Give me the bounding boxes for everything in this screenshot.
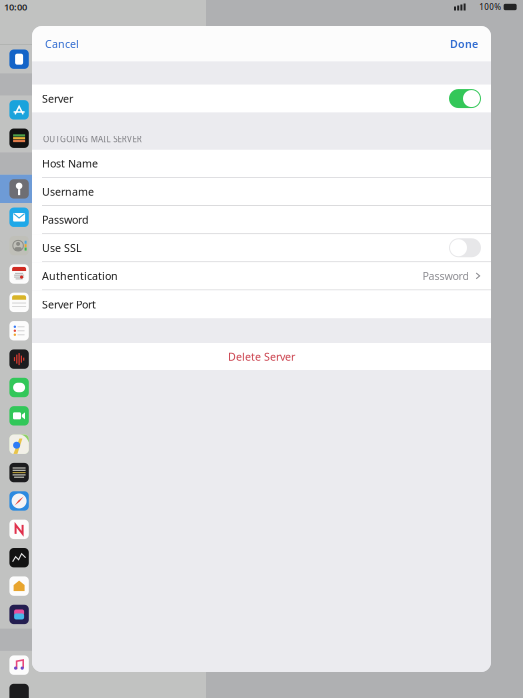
staticText: OUTGOING MAIL SERVER: [43, 134, 142, 144]
button[interactable]: Done: [411, 26, 491, 62]
button[interactable]: Passwords: [0, 175, 206, 203]
button[interactable]: Username: [32, 178, 491, 206]
button[interactable]: Server Port: [32, 290, 491, 318]
button[interactable]: Authentication: [32, 262, 491, 290]
button[interactable]: Contacts: [0, 231, 206, 260]
button[interactable]: Shortcuts: [0, 600, 206, 629]
button[interactable]: Server: [32, 84, 491, 113]
button[interactable]: Cancel: [32, 26, 122, 62]
button[interactable]: Reminders: [0, 317, 206, 345]
button[interactable]: Password: [32, 206, 491, 234]
button[interactable]: FaceTime: [0, 402, 206, 430]
button[interactable]: Privacy & Security: [0, 45, 206, 73]
button[interactable]: Stocks: [0, 543, 206, 572]
staticText: Use SSL: [42, 241, 82, 255]
button[interactable]: Calendar: [0, 260, 206, 288]
button[interactable]: App Store: [0, 96, 206, 124]
button[interactable]: Maps: [0, 430, 206, 458]
staticText: Server Port: [42, 297, 96, 311]
staticText: Server: [42, 91, 73, 106]
button[interactable]: Music: [0, 651, 206, 679]
staticText: 100%: [479, 2, 501, 12]
staticText: Username: [42, 184, 94, 199]
button[interactable]: Safari: [0, 487, 206, 515]
button[interactable]: Mail: [0, 203, 206, 231]
button[interactable]: TV: [0, 679, 206, 698]
button[interactable]: Wallet: [0, 124, 206, 152]
staticText: Password: [42, 213, 89, 227]
staticText: Cancel: [45, 37, 79, 51]
staticText: Host Name: [42, 156, 98, 170]
button[interactable]: Voice Memos: [0, 345, 206, 373]
button[interactable]: Home: [0, 572, 206, 600]
button[interactable]: Notes: [0, 288, 206, 317]
staticText: Authentication: [42, 269, 118, 283]
button[interactable]: Messages: [0, 373, 206, 402]
button[interactable]: Use SSL: [32, 234, 491, 262]
button[interactable]: Host Name: [32, 150, 491, 178]
staticText: Password: [422, 269, 469, 283]
button[interactable]: News: [0, 515, 206, 543]
button[interactable]: Delete Server: [32, 343, 491, 370]
staticText: 10:00: [4, 1, 27, 13]
button[interactable]: Books: [0, 458, 206, 487]
staticText: Delete Server: [228, 349, 295, 364]
staticText: Done: [450, 37, 478, 51]
